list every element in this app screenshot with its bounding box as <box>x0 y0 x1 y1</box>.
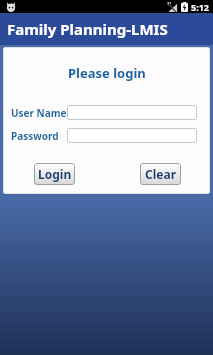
staticText: User Name <box>11 106 67 120</box>
button[interactable]: Clear <box>140 163 181 185</box>
staticText: Please login <box>68 64 146 82</box>
staticText: Password <box>11 129 59 143</box>
staticText: 5:12 <box>191 1 209 13</box>
staticText: Family Planning-LMIS <box>7 19 168 39</box>
button[interactable] <box>67 128 197 143</box>
button[interactable] <box>67 105 197 120</box>
staticText: Login <box>38 166 72 182</box>
staticText: Clear <box>145 166 176 182</box>
button[interactable]: Login <box>34 163 75 185</box>
